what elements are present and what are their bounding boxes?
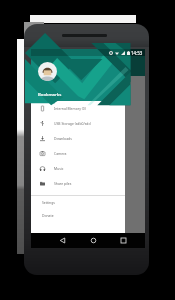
staticText: Camera [54, 151, 67, 156]
button[interactable]: USB Storage (sdb0/sdc) [31, 116, 125, 131]
button[interactable]: Donate [31, 209, 125, 222]
button[interactable]: Camera [31, 146, 125, 161]
staticText: Downloads [54, 136, 72, 141]
button[interactable]: Recent apps [113, 233, 133, 248]
staticText: Donate [42, 213, 54, 218]
button[interactable]: Downloads [31, 131, 125, 146]
staticText: 14:53 [131, 50, 143, 56]
staticText: Music [54, 166, 64, 171]
staticText: USB Storage (sdb0/sdc) [54, 121, 92, 126]
button[interactable]: Music [31, 161, 125, 176]
button[interactable]: Settings [31, 196, 125, 209]
staticText: Share piles [54, 181, 72, 186]
staticText: Settings [42, 200, 55, 205]
button[interactable]: Share piles [31, 176, 125, 191]
button[interactable]: Internal Memory (0) [31, 101, 125, 116]
button[interactable]: Home [83, 233, 103, 248]
button[interactable]: Back [52, 233, 72, 248]
staticText: Bookmarks [38, 91, 62, 97]
staticText: Internal Memory (0) [54, 106, 86, 111]
